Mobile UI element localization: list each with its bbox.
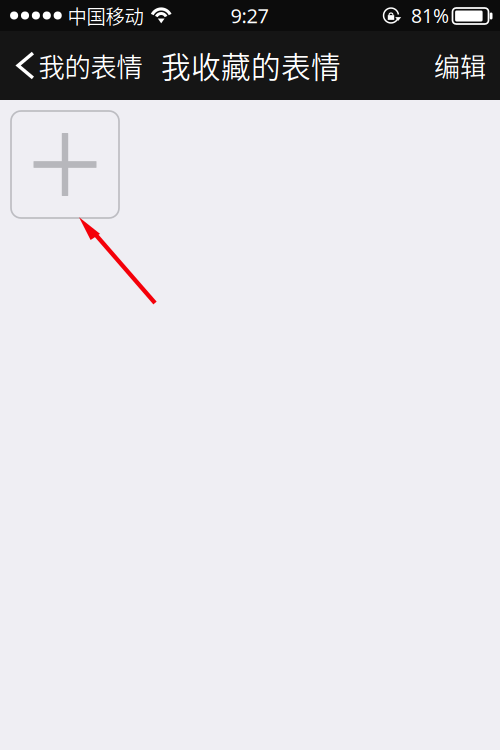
- button[interactable]: Add sticker: [11, 111, 119, 218]
- button[interactable]: 编辑: [402, 31, 500, 100]
- staticText: 81%: [411, 2, 449, 29]
- staticText: 9:27: [230, 2, 268, 29]
- staticText: 编辑: [434, 47, 486, 84]
- staticText: 中国移动: [67, 1, 143, 29]
- button[interactable]: 我的表情: [1, 31, 169, 100]
- staticText: 我收藏的表情: [161, 44, 341, 86]
- staticText: 我的表情: [38, 46, 142, 84]
